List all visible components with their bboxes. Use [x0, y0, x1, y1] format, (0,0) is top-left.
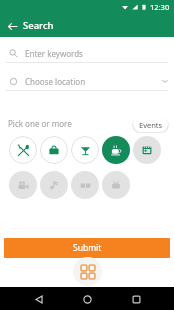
button[interactable]: Nightlife — [71, 136, 99, 164]
button[interactable]: Events — [133, 136, 161, 164]
staticText: Pick one or more — [8, 118, 72, 129]
button[interactable]: Cafes — [102, 136, 130, 164]
button[interactable]: Movies — [9, 171, 37, 199]
button[interactable]: Home — [77, 289, 97, 309]
button[interactable]: Submit — [4, 238, 170, 258]
staticText: Events — [139, 120, 163, 130]
button[interactable]: Books — [71, 171, 99, 199]
staticText: Choose location — [25, 76, 86, 87]
button[interactable]: Back — [5, 19, 19, 33]
button[interactable]: TV — [102, 171, 130, 199]
staticText: 12:30 — [150, 2, 170, 12]
button[interactable]: Enter keywords — [0, 44, 174, 62]
staticText: Submit — [73, 242, 102, 254]
staticText: Search — [23, 19, 54, 32]
staticText: Enter keywords — [25, 48, 83, 59]
button[interactable]: Restaurants — [9, 136, 37, 164]
button[interactable]: Recents — [126, 289, 146, 309]
button[interactable]: Back — [29, 289, 49, 309]
button[interactable]: Choose location — [0, 72, 174, 90]
button[interactable]: Music — [40, 171, 68, 199]
button[interactable]: Shopping — [40, 136, 68, 164]
